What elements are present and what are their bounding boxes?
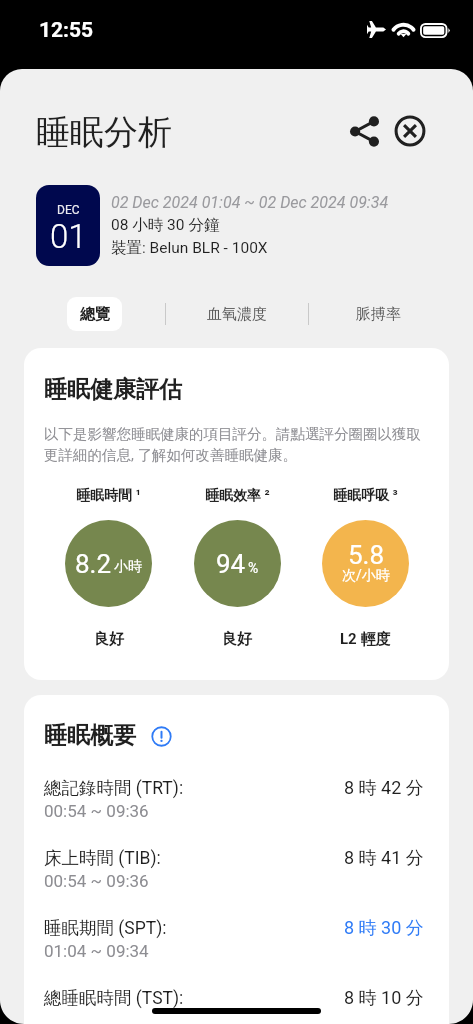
staticText: 94 bbox=[216, 549, 246, 579]
staticText: 良好 bbox=[94, 630, 124, 649]
button[interactable]: DEC bbox=[36, 185, 100, 266]
staticText: 01 bbox=[50, 217, 87, 256]
button[interactable]: 床上時間 (TIB): bbox=[44, 847, 429, 917]
staticText: 睡眠效率 ² bbox=[205, 487, 270, 505]
staticText: 睡眠期間 (SPT): bbox=[44, 917, 167, 939]
button[interactable]: 睡眠效率 ² bbox=[173, 487, 301, 649]
staticText: 02 Dec 2024 01:04 ~ 02 Dec 2024 09:34 bbox=[111, 193, 389, 212]
staticText: 12:55 bbox=[39, 18, 94, 43]
staticText: 睡眠健康評估 bbox=[44, 375, 182, 404]
button[interactable]: Close bbox=[388, 109, 432, 153]
button[interactable]: 總記錄時間 (TRT): bbox=[44, 777, 429, 847]
other: Battery bbox=[420, 23, 450, 38]
button[interactable]: 血氧濃度 bbox=[197, 297, 277, 331]
button[interactable]: 脈搏率 bbox=[338, 297, 418, 331]
staticText: 睡眠呼吸 ³ bbox=[333, 487, 398, 505]
staticText: DEC bbox=[57, 203, 80, 217]
staticText: 血氧濃度 bbox=[207, 305, 267, 324]
staticText: 00:54 ~ 09:36 bbox=[44, 801, 149, 821]
staticText: 以下是影響您睡眠健康的項目評分。請點選評分圈圈以獲取更詳細的信息, 了解如何改善… bbox=[44, 425, 429, 464]
staticText: 01:04 ~ 09:34 bbox=[44, 941, 149, 961]
button[interactable]: 睡眠時間 ¹ bbox=[44, 487, 173, 649]
button[interactable]: 總覽 bbox=[67, 297, 122, 331]
button[interactable]: 睡眠呼吸 ³ bbox=[301, 487, 429, 649]
other: Airplane mode bbox=[367, 21, 386, 38]
staticText: 睡眠時間 ¹ bbox=[76, 487, 141, 505]
staticText: 小時 bbox=[114, 558, 142, 576]
staticText: 次/小時 bbox=[342, 567, 390, 585]
staticText: 睡眠分析 bbox=[36, 111, 172, 154]
staticText: 8 時 10 分 bbox=[344, 987, 424, 1010]
staticText: 8 時 41 分 bbox=[344, 847, 424, 870]
staticText: 8 時 30 分 bbox=[344, 917, 424, 940]
staticText: % bbox=[248, 560, 259, 576]
staticText: 睡眠概要 bbox=[44, 721, 136, 750]
staticText: 總睡眠時間 (TST): bbox=[44, 987, 184, 1009]
button[interactable]: Share bbox=[342, 109, 386, 153]
other: Wi-Fi bbox=[393, 22, 414, 37]
staticText: 床上時間 (TIB): bbox=[44, 847, 161, 869]
staticText: L2 輕度 bbox=[340, 630, 391, 649]
staticText: 裝置: Belun BLR - 100X bbox=[111, 238, 268, 258]
button[interactable]: Info bbox=[148, 723, 174, 749]
staticText: 00:54 ~ 09:36 bbox=[44, 871, 149, 891]
staticText: 08 小時 30 分鐘 bbox=[111, 215, 220, 235]
staticText: 總覽 bbox=[80, 305, 110, 324]
staticText: 5.8 bbox=[348, 540, 385, 570]
staticText: 脈搏率 bbox=[356, 305, 401, 324]
button[interactable]: 睡眠期間 (SPT): bbox=[44, 917, 429, 987]
staticText: 8.2 bbox=[75, 549, 112, 579]
staticText: 總記錄時間 (TRT): bbox=[44, 777, 184, 799]
staticText: 良好 bbox=[222, 630, 252, 649]
staticText: 8 時 42 分 bbox=[344, 777, 424, 800]
button[interactable]: 總睡眠時間 (TST): bbox=[44, 987, 429, 1024]
